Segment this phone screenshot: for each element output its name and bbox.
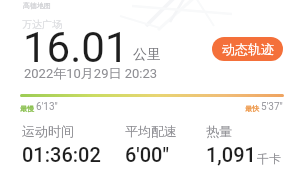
staticText: 热量 [206,123,232,139]
staticText: 16.01 [23,23,129,72]
staticText: 动态轨迹 [222,41,274,57]
staticText: 万达广场 [22,18,62,31]
button[interactable]: 最快 [245,101,283,113]
button[interactable]: 平均配速 [125,123,177,166]
staticText: 5'37" [261,101,283,113]
staticText: 1,091 [206,143,256,166]
staticText: 公里 [133,46,161,64]
staticText: 平均配速 [125,123,177,139]
staticText: 最慢 [20,104,34,113]
button[interactable]: 动态轨迹 [212,37,283,61]
staticText: 高德地图 [23,1,51,10]
staticText: 6'13" [36,101,58,113]
staticText: 01:36:02 [22,143,101,166]
staticText: 2022年10月29日 20:23 [24,65,158,81]
staticText: 运动时间 [22,123,74,139]
button[interactable]: 热量 [206,123,282,166]
button[interactable]: 最慢 [20,101,58,113]
staticText: 千卡 [257,151,281,166]
staticText: 最快 [245,104,259,113]
button[interactable]: 运动时间 [22,123,101,166]
staticText: 6'00" [125,143,169,166]
